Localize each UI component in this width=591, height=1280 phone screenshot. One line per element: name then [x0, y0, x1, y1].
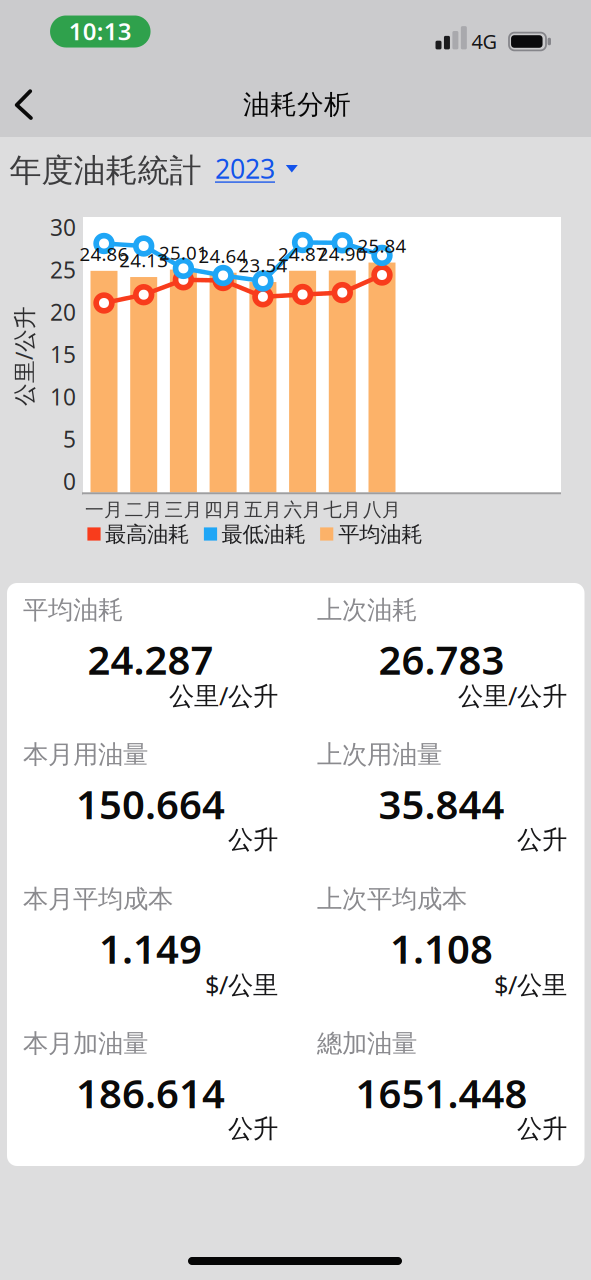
staticText: 平均油耗 [338, 521, 422, 548]
staticText: 25.01 [159, 240, 208, 265]
staticText: 25 [50, 255, 76, 285]
staticText: 24.64 [199, 243, 248, 268]
staticText: 10 [50, 381, 76, 412]
staticText: 26.783 [378, 633, 504, 686]
staticText: 公里/公升 [0, 341, 74, 371]
staticText: 本月加油量 [23, 1028, 148, 1059]
staticText: $/公里 [494, 967, 567, 1001]
staticText: 最高油耗 [105, 521, 189, 548]
staticText: 五月 [244, 498, 282, 521]
staticText: 公升 [228, 1113, 278, 1144]
button[interactable]: 2023 [203, 155, 303, 183]
staticText: 公升 [228, 824, 278, 855]
staticText: 四月 [204, 498, 242, 521]
staticText: 10:13 [69, 15, 132, 47]
staticText: 24.90 [318, 241, 367, 266]
staticText: 上次油耗 [317, 594, 417, 625]
staticText: 公里/公升 [458, 678, 567, 712]
staticText: 總加油量 [317, 1028, 417, 1059]
staticText: 公升 [517, 1113, 567, 1144]
staticText: 24.86 [79, 241, 128, 266]
staticText: 24.87 [278, 241, 327, 266]
staticText: 最低油耗 [221, 521, 305, 548]
staticText: 本月用油量 [23, 739, 148, 770]
staticText: 2023 [215, 151, 275, 186]
staticText: 公里/公升 [169, 678, 278, 712]
staticText: 30 [50, 212, 76, 242]
staticText: 1651.448 [355, 1066, 527, 1119]
staticText: 年度油耗統計 [9, 151, 201, 190]
staticText: 5 [63, 424, 76, 454]
staticText: 油耗分析 [243, 88, 351, 121]
staticText: 24.287 [87, 633, 213, 686]
staticText: $/公里 [205, 967, 278, 1001]
staticText: 15 [50, 339, 76, 369]
staticText: 35.844 [378, 777, 504, 830]
staticText: 0 [63, 466, 76, 496]
staticText: 上次平均成本 [317, 883, 467, 914]
staticText: 1.149 [99, 922, 202, 975]
staticText: 上次用油量 [317, 739, 442, 770]
staticText: 三月 [164, 498, 202, 521]
staticText: 六月 [284, 498, 322, 521]
staticText: 公升 [517, 824, 567, 855]
staticText: 4G [471, 28, 497, 54]
staticText: 八月 [363, 498, 401, 521]
staticText: 平均油耗 [23, 594, 123, 625]
button[interactable] [0, 83, 44, 127]
staticText: 150.664 [76, 777, 225, 830]
staticText: 186.614 [76, 1066, 225, 1119]
staticText: 23.54 [238, 253, 287, 277]
staticText: 七月 [323, 498, 361, 521]
staticText: 本月平均成本 [23, 883, 173, 914]
staticText: 20 [50, 297, 76, 327]
staticText: 25.84 [357, 233, 406, 258]
staticText: 二月 [125, 498, 163, 521]
staticText: 1.108 [390, 922, 493, 975]
staticText: 一月 [85, 498, 123, 521]
staticText: 24.13 [119, 248, 168, 272]
